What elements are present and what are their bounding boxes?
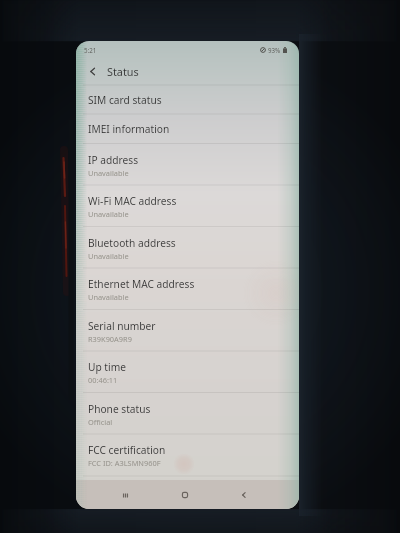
staticText: 5:21	[84, 46, 97, 54]
staticText: Up time	[88, 360, 126, 374]
staticText: Unavailable	[88, 292, 129, 302]
staticText: Unavailable	[88, 251, 129, 261]
staticText: SIM card status	[88, 93, 162, 107]
staticText: Official	[88, 417, 113, 427]
button[interactable]: Up time	[76, 351, 299, 393]
button[interactable]: FCC certification	[76, 434, 299, 476]
button[interactable]: Wi-Fi MAC address	[76, 185, 299, 227]
button[interactable]: Serial number	[76, 310, 299, 352]
staticText: Wi-Fi MAC address	[88, 194, 177, 208]
button[interactable]: Recents	[112, 482, 138, 508]
staticText: Status	[107, 64, 139, 79]
staticText: R39K90A9R9	[88, 334, 132, 344]
button[interactable]: IP address	[76, 144, 299, 186]
button[interactable]: SIM card status	[76, 85, 299, 114]
button[interactable]: Home	[172, 482, 198, 508]
button[interactable]: Back	[83, 62, 101, 80]
staticText: 00:46:11	[88, 375, 118, 385]
staticText: FCC ID: A3LSMN960F	[88, 458, 161, 468]
staticText: 93%	[268, 46, 281, 54]
staticText: Unavailable	[88, 168, 129, 178]
staticText: FCC certification	[88, 443, 166, 457]
staticText: IP address	[88, 153, 139, 167]
button[interactable]: Phone status	[76, 393, 299, 435]
button[interactable]: Ethernet MAC address	[76, 268, 299, 310]
button[interactable]: Bluetooth address	[76, 227, 299, 269]
staticText: Unavailable	[88, 209, 129, 219]
staticText: Phone status	[88, 402, 151, 416]
staticText: Bluetooth address	[88, 236, 176, 250]
button[interactable]: IMEI information	[76, 114, 299, 144]
button[interactable]: Back	[231, 482, 257, 508]
staticText: Serial number	[88, 319, 156, 333]
staticText: IMEI information	[88, 122, 170, 136]
staticText: Ethernet MAC address	[88, 277, 195, 291]
